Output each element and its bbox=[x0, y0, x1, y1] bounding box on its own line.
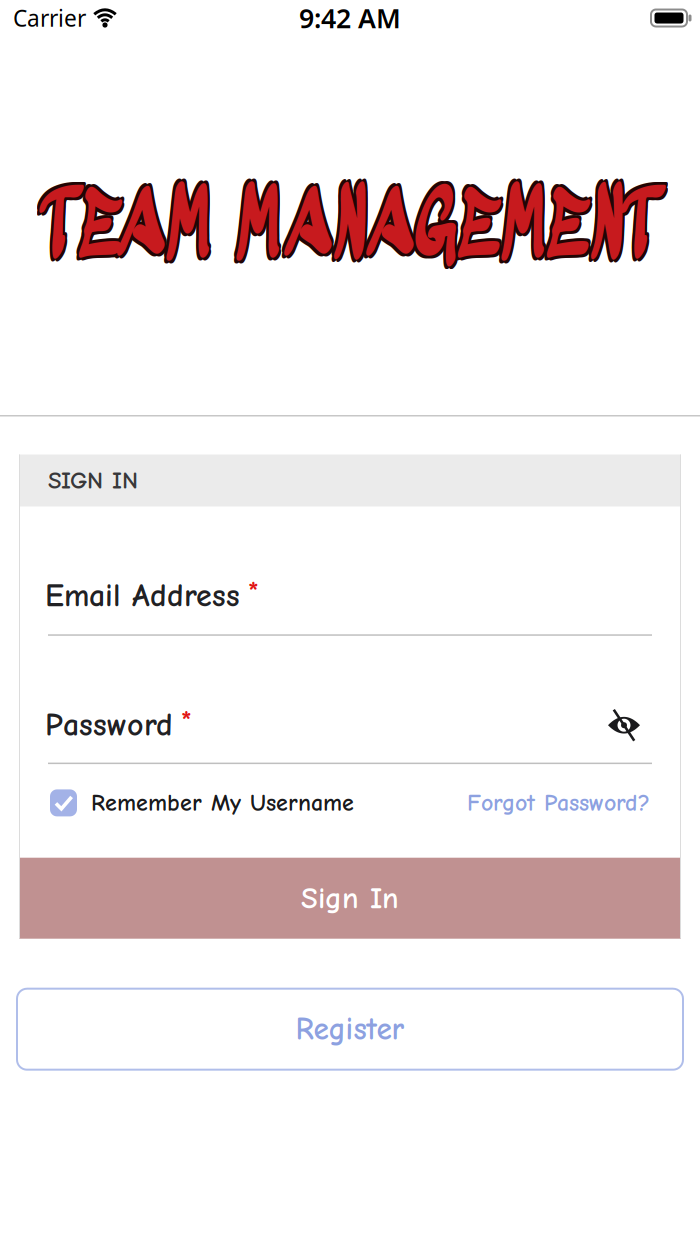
staticText: TEAM MANAGEMENT bbox=[42, 184, 658, 276]
staticText: Register bbox=[295, 1011, 404, 1047]
staticText: SIGN IN bbox=[48, 466, 138, 495]
staticText: * bbox=[181, 705, 192, 737]
staticText: Sign In bbox=[301, 881, 399, 916]
staticText: 9:42 AM bbox=[299, 0, 401, 36]
staticText: TEAM MANAGEMENT bbox=[44, 186, 660, 278]
staticText: Remember My Username bbox=[91, 789, 354, 817]
staticText: Password bbox=[45, 707, 173, 744]
staticText: Carrier bbox=[13, 3, 86, 33]
staticText: TEAM MANAGEMENT bbox=[40, 182, 656, 274]
staticText: TEAM MANAGEMENT bbox=[44, 182, 660, 274]
staticText: Forgot Password? bbox=[467, 789, 650, 817]
staticText: TEAM MANAGEMENT bbox=[40, 186, 656, 278]
staticText: * bbox=[248, 575, 259, 608]
staticText: Email Address bbox=[45, 577, 240, 614]
